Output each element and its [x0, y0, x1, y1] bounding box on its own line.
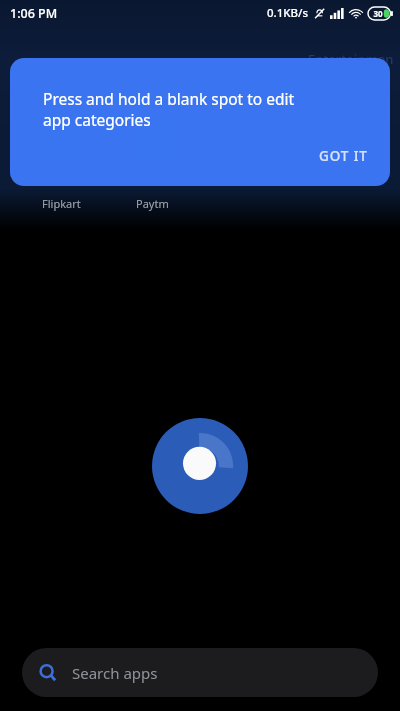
staticText: Paytm [136, 196, 169, 211]
button[interactable]: GOT IT [303, 139, 384, 173]
staticText: 1:06 PM [10, 5, 58, 22]
staticText: Flipkart [42, 196, 81, 211]
staticText: GOT IT [319, 147, 368, 165]
staticText: Entertainment [308, 50, 396, 86]
staticText: Press and hold a blank spot to edit app … [43, 88, 295, 131]
staticText: 30 [373, 8, 383, 19]
staticText: Search apps [72, 663, 158, 683]
button[interactable]: Search apps [22, 648, 378, 697]
staticText: 0.1KB/s [267, 5, 309, 21]
